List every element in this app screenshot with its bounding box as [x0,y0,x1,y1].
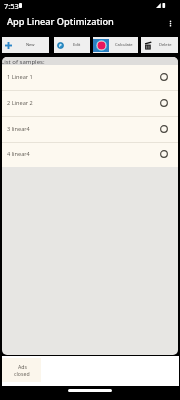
staticText: App Linear Optimization [7,15,114,28]
button[interactable]: New [2,37,49,53]
button[interactable]: 4 linear4 [2,143,178,167]
staticText: 4 linear4 [7,150,160,158]
button[interactable]: 3 linear4 [2,117,178,142]
staticText: 7:53 [4,1,19,11]
staticText: Edit [73,42,81,48]
staticText: 1 Linear 1 [7,73,160,81]
staticText: 2 Linear 2 [7,99,160,107]
button[interactable]: Calculate [93,37,138,53]
button[interactable]: 1 Linear 1 [2,65,178,90]
staticText: Calculate [115,42,133,48]
staticText: List of samples: [2,58,45,66]
button[interactable]: 2 Linear 2 [2,91,178,116]
staticText: closed [14,370,30,377]
staticText: 3 linear4 [7,125,160,133]
staticText: Ads [18,363,27,370]
button[interactable]: Ads [2,358,41,382]
button[interactable]: Edit [54,37,90,53]
button[interactable]: More options [160,11,180,36]
button[interactable]: Delete [141,37,178,53]
staticText: New [26,42,35,48]
staticText: Delete [159,42,172,48]
